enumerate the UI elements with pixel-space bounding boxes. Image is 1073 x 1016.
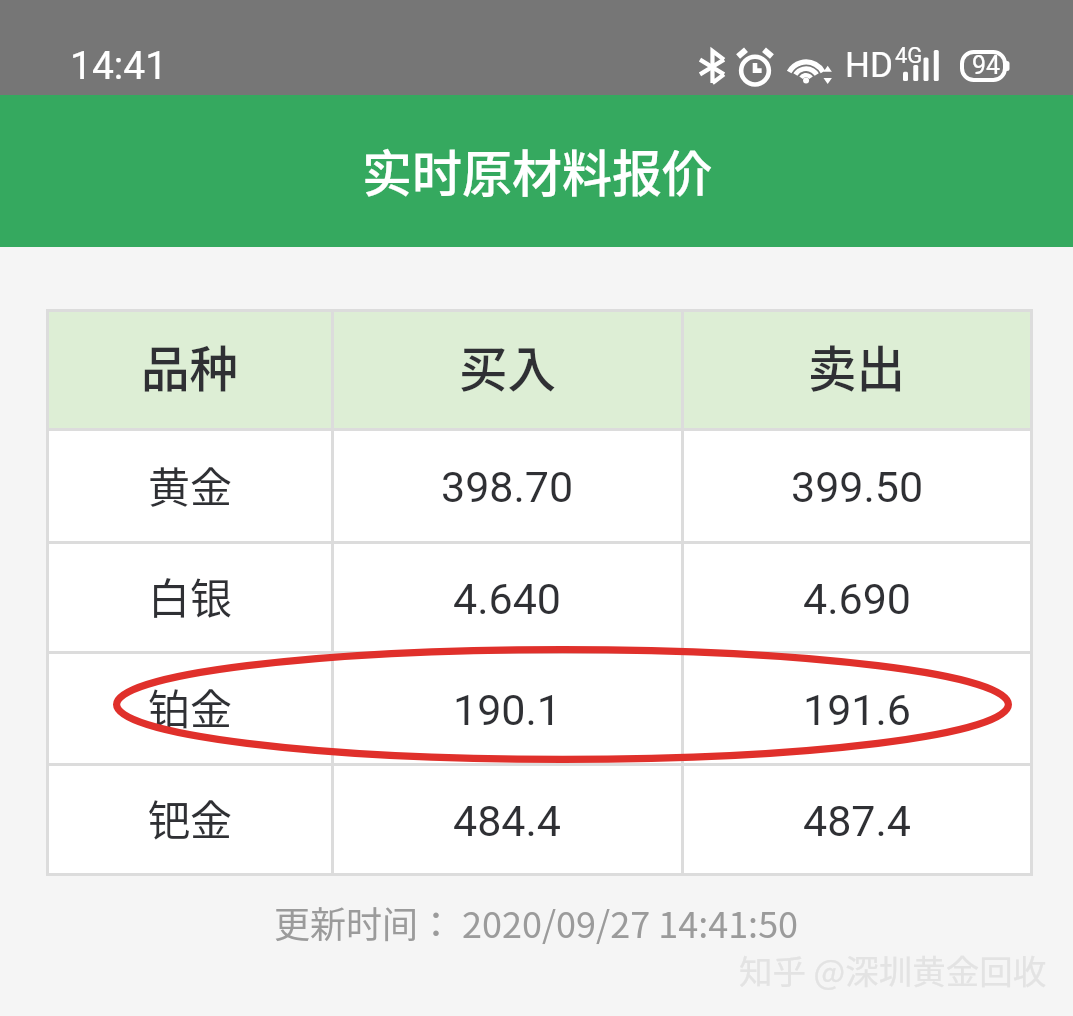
staticText: HD	[845, 45, 893, 86]
button[interactable]: 黄金	[46, 431, 1033, 541]
staticText: 更新时间： 2020/09/27 14:41:50	[274, 896, 799, 948]
staticText: 487.4	[803, 796, 912, 846]
staticText: 484.4	[453, 796, 562, 846]
staticText: 4G	[895, 43, 923, 69]
staticText: 钯金	[148, 787, 233, 848]
staticText: 铂金	[148, 676, 233, 737]
staticText: 白银	[148, 565, 233, 626]
button[interactable]: 白银	[46, 544, 1033, 651]
staticText: 黄金	[148, 454, 233, 515]
button[interactable]: 品种	[46, 312, 1033, 428]
staticText: 399.50	[791, 462, 924, 512]
staticText: 买入	[459, 331, 557, 401]
staticText: 94	[972, 51, 1001, 80]
staticText: 14:41	[70, 43, 168, 89]
button[interactable]: 钯金	[46, 766, 1033, 873]
button[interactable]: 铂金	[46, 654, 1033, 763]
staticText: 实时原材料报价	[362, 134, 712, 206]
staticText: 品种	[141, 331, 239, 401]
staticText: 4.640	[453, 574, 562, 624]
staticText: 知乎 @深圳黄金回收	[739, 945, 1047, 994]
staticText: 4.690	[803, 574, 912, 624]
button[interactable]: 实时原材料报价	[0, 95, 1073, 247]
staticText: 191.6	[803, 685, 912, 735]
staticText: 190.1	[453, 685, 562, 735]
staticText: 398.70	[441, 462, 574, 512]
staticText: 卖出	[808, 331, 906, 401]
